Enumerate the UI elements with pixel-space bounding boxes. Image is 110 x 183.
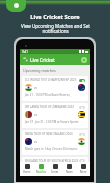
staticText: 9:41 xyxy=(22,50,28,54)
button[interactable]: ENGLAND TOUR OF SOUTH AFRICA 2023 xyxy=(22,157,88,162)
staticText: Live Cricket Score xyxy=(30,13,80,21)
staticText: SRI LANKA TOUR OF ZIMBABWE 2023 xyxy=(25,105,74,109)
staticText: Match goes in 1 day 2 hours 30 minutes xyxy=(25,147,78,151)
button[interactable]: Live Cricket xyxy=(23,54,87,65)
staticText: vs xyxy=(34,113,37,117)
staticText: Series xyxy=(51,170,59,174)
staticText: Matches xyxy=(36,170,47,174)
staticText: ENGLAND TOUR OF SOUTH AFRICA 2023 xyxy=(25,159,79,162)
button[interactable]: Notify xyxy=(79,106,85,109)
button[interactable]: Matches xyxy=(34,162,48,176)
button[interactable]: Notify xyxy=(79,133,85,136)
button[interactable]: SRI LANKA TOUR OF ZIMBABWE 2023 xyxy=(22,103,88,128)
staticText: ICC WORLD TEST CHAMPIONSHIP 2023 xyxy=(25,78,77,82)
staticText: vs xyxy=(34,140,37,144)
staticText: News xyxy=(66,170,73,174)
staticText: More xyxy=(80,170,87,174)
staticText: Upcoming matches xyxy=(23,68,56,73)
button[interactable]: Home xyxy=(20,162,34,176)
staticText: INDIA TOUR OF NEW ZEALAND 2023 xyxy=(25,132,73,136)
staticText: Live Cricket xyxy=(30,57,55,63)
button[interactable]: INDIA TOUR OF NEW ZEALAND 2023 xyxy=(22,130,88,155)
staticText: Jan 27 - Jan 31 - 1:00 PM at Harare Spor… xyxy=(25,120,85,124)
button[interactable]: Notify xyxy=(79,79,85,82)
staticText: Jan 21 - 10:00 PM at Basin Reserve, Well… xyxy=(25,93,85,97)
button[interactable]: Notify xyxy=(79,159,85,162)
button[interactable]: Profile xyxy=(81,57,87,63)
staticText: Home xyxy=(23,170,31,174)
button[interactable]: More xyxy=(76,162,90,176)
staticText: View Upcoming Matches and Set notificati… xyxy=(21,23,90,35)
button[interactable]: ICC WORLD TEST CHAMPIONSHIP 2023 xyxy=(22,76,88,101)
button[interactable]: News xyxy=(62,162,76,176)
staticText: vs xyxy=(34,86,37,90)
button[interactable]: Series xyxy=(48,162,62,176)
